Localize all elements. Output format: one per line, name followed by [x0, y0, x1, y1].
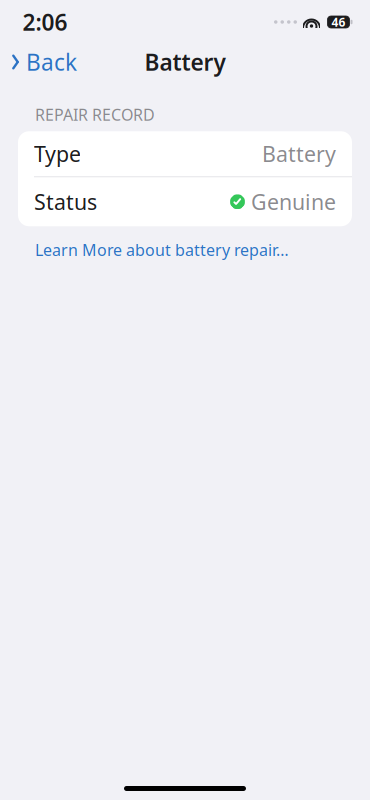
staticText: Status: [34, 188, 97, 216]
button[interactable]: Back: [0, 41, 77, 83]
button[interactable]: Type: [18, 131, 352, 176]
staticText: 2:06: [22, 7, 67, 37]
staticText: Back: [26, 47, 77, 77]
staticText: Learn More about battery repair…: [35, 239, 289, 260]
staticText: Type: [34, 140, 81, 168]
staticText: Genuine: [251, 188, 336, 216]
staticText: Battery: [144, 47, 225, 77]
staticText: REPAIR RECORD: [35, 104, 155, 125]
button[interactable]: Status: [18, 177, 352, 226]
button[interactable]: Learn More about battery repair…: [35, 235, 289, 264]
staticText: Battery: [262, 140, 336, 168]
staticText: 46: [331, 14, 345, 30]
